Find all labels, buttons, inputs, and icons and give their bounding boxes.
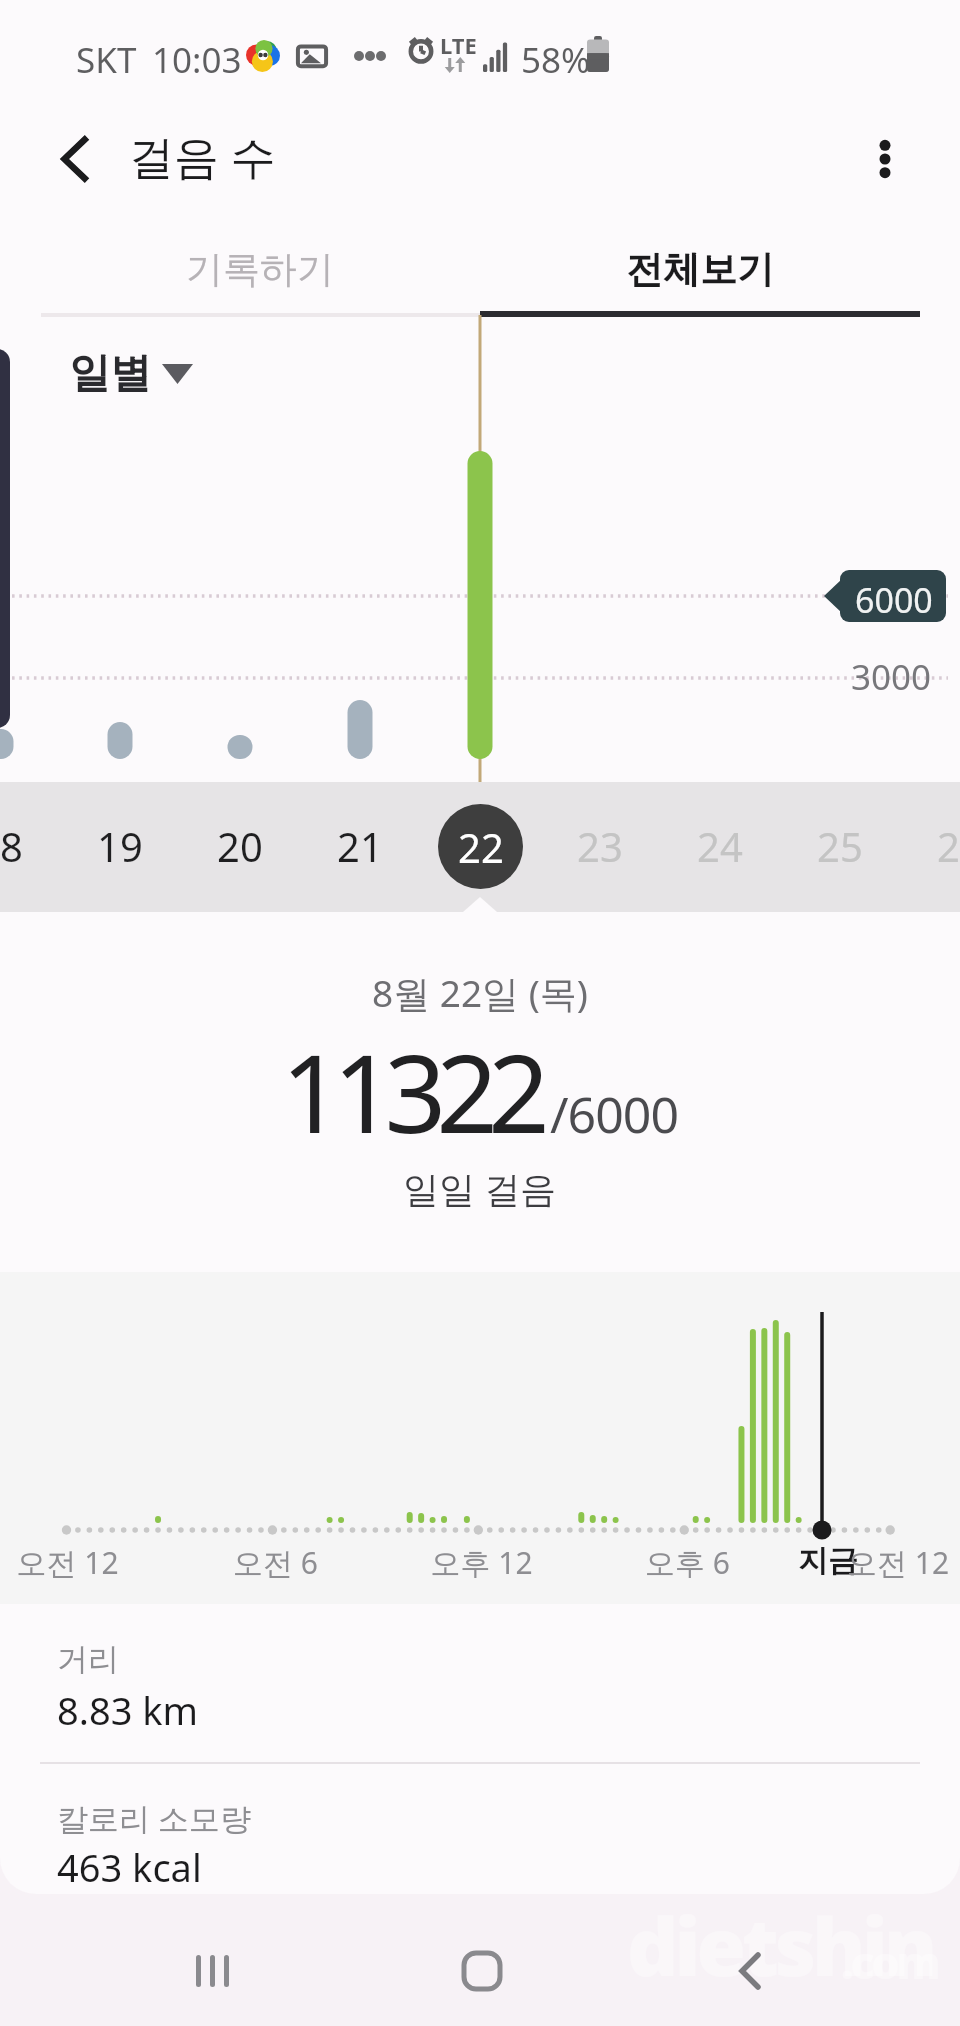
button[interactable]: 22 (425, 798, 535, 894)
staticText: 6000 (855, 577, 933, 623)
staticText: 21 (337, 819, 383, 873)
button[interactable]: 기록하기 (40, 225, 480, 313)
staticText: 칼로리 소모량 (57, 1797, 252, 1839)
staticText: 오전 12 (16, 1542, 119, 1583)
staticText: 8.83 km (57, 1684, 199, 1736)
staticText: 전체보기 (626, 246, 774, 293)
button[interactable]: More options (840, 114, 930, 204)
button[interactable]: 23 (545, 798, 655, 894)
button[interactable]: Home (422, 1911, 542, 2026)
staticText: SKT (76, 36, 137, 84)
button[interactable]: Back (690, 1911, 810, 2026)
staticText: 18 (0, 819, 23, 873)
button[interactable]: 21 (305, 798, 415, 894)
staticText: 오전 12 (847, 1542, 950, 1583)
staticText: 19 (97, 819, 143, 873)
staticText: 오후 6 (645, 1542, 730, 1583)
staticText: 26 (937, 819, 960, 873)
staticText: 24 (697, 819, 743, 873)
staticText: 3000 (851, 653, 932, 701)
staticText: 오전 6 (233, 1542, 318, 1583)
staticText: 걸음 수 (129, 125, 276, 186)
button[interactable]: 19 (65, 798, 175, 894)
staticText: 오후 12 (430, 1542, 533, 1583)
staticText: 23 (577, 819, 623, 873)
button[interactable]: 일별 (69, 348, 193, 400)
staticText: 463 kcal (57, 1841, 202, 1893)
staticText: LTE (440, 30, 477, 60)
staticText: 일일 걸음 (403, 1164, 557, 1213)
staticText: /6000 (550, 1080, 678, 1148)
staticText: 58% (521, 36, 591, 84)
staticText: 8월 22일 (목) (372, 967, 588, 1018)
button[interactable]: Back (30, 114, 120, 204)
button[interactable]: 거리 (0, 1604, 960, 1762)
staticText: 20 (217, 819, 263, 873)
staticText: 거리 (57, 1640, 119, 1679)
button[interactable]: Recents (153, 1910, 273, 2026)
staticText: 지금 (798, 1542, 858, 1580)
button[interactable]: 18 (0, 798, 55, 894)
button[interactable]: 20 (185, 798, 295, 894)
staticText: dietshin (627, 1890, 934, 1999)
button[interactable]: 26 (905, 798, 960, 894)
button[interactable]: 24 (665, 798, 775, 894)
button[interactable]: 25 (785, 798, 895, 894)
staticText: 기록하기 (186, 246, 334, 293)
staticText: 10:03 (152, 36, 242, 84)
staticText: 일별 (69, 348, 151, 400)
button[interactable]: 칼로리 소모량 (0, 1763, 960, 1894)
button[interactable]: 전체보기 (480, 225, 920, 313)
staticText: 25 (817, 819, 863, 873)
staticText: 22 (458, 820, 504, 874)
staticText: 11322 (281, 1018, 540, 1165)
